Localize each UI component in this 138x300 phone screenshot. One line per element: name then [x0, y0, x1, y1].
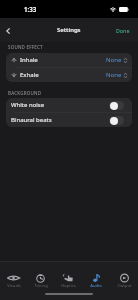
staticText: Audio: [90, 283, 102, 289]
staticText: 1:33: [24, 5, 37, 13]
staticText: Inhale: [20, 56, 38, 64]
button[interactable]: Output: [110, 262, 138, 289]
staticText: Output: [117, 283, 132, 289]
staticText: Visuals: [7, 283, 21, 289]
button[interactable]: White noise: [6, 98, 132, 112]
button[interactable]: Visuals: [0, 262, 27, 289]
button[interactable]: Inhale: [6, 53, 132, 67]
button[interactable]: Audio: [82, 262, 110, 289]
staticText: Haptics: [61, 283, 76, 289]
staticText: Settings: [57, 26, 81, 34]
button[interactable]: Timing: [27, 262, 54, 289]
button[interactable]: Done: [107, 18, 138, 42]
staticText: Binaural beats: [11, 116, 52, 124]
button[interactable]: Exhale: [6, 68, 132, 82]
button[interactable]: Haptics: [54, 262, 82, 289]
staticText: Timing: [34, 283, 48, 289]
staticText: Exhale: [20, 71, 39, 79]
staticText: None: [106, 56, 122, 64]
button[interactable]: Binaural beats: [6, 113, 132, 127]
staticText: None: [106, 71, 122, 79]
staticText: Done: [116, 27, 130, 34]
staticText: BACKGROUND: [8, 90, 42, 96]
staticText: White noise: [11, 101, 45, 109]
button[interactable]: Back: [0, 18, 16, 42]
staticText: SOUND EFFECT: [8, 44, 43, 50]
